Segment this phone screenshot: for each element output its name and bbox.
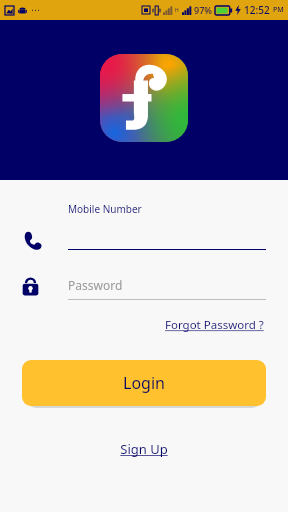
- staticText: 12:52: [244, 3, 270, 17]
- button[interactable]: Password: [22, 274, 266, 300]
- other: Password: [22, 277, 39, 297]
- other: Phone: [22, 230, 42, 250]
- staticText: ⋯: [31, 5, 40, 15]
- staticText: Mobile Number: [68, 202, 142, 216]
- button[interactable]: Mobile Number: [22, 202, 266, 250]
- button[interactable]: Sign Up: [112, 436, 176, 462]
- staticText: 97%: [194, 4, 212, 16]
- staticText: Forgot Password ?: [165, 317, 264, 333]
- staticText: PM: [273, 5, 284, 15]
- button[interactable]: Login: [22, 360, 266, 406]
- staticText: H: [175, 7, 179, 14]
- staticText: Sign Up: [120, 440, 168, 458]
- button[interactable]: Forgot Password ?: [163, 314, 266, 336]
- staticText: Password: [68, 277, 123, 293]
- staticText: Login: [123, 372, 165, 394]
